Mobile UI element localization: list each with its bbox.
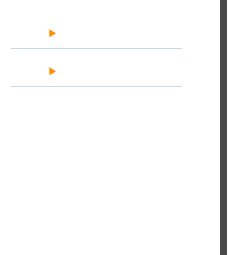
button[interactable]: Play [49,67,56,75]
button[interactable]: Play [49,29,56,37]
